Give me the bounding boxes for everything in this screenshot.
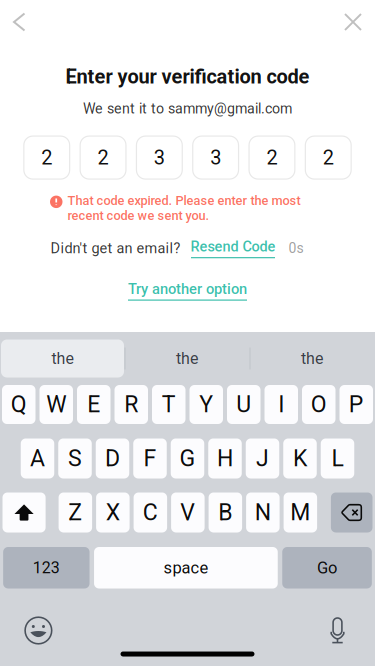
staticText: 123 — [33, 558, 60, 577]
staticText: K — [293, 445, 307, 472]
button[interactable]: G — [171, 438, 204, 478]
button[interactable]: F — [133, 438, 167, 478]
button[interactable]: W — [39, 385, 73, 424]
staticText: X — [106, 499, 120, 526]
button[interactable]: the — [125, 339, 249, 377]
staticText: Y — [199, 391, 213, 418]
staticText: That code expired. Please enter the most… — [67, 193, 300, 223]
staticText: 3 — [154, 146, 165, 169]
button[interactable]: D — [96, 438, 129, 478]
button[interactable]: 2 — [80, 136, 126, 179]
button[interactable]: 2 — [305, 136, 351, 179]
button[interactable]: O — [302, 385, 335, 424]
button[interactable]: R — [114, 385, 148, 424]
button[interactable]: X — [96, 492, 130, 532]
button[interactable]: Z — [59, 492, 92, 532]
button[interactable]: Go — [282, 547, 372, 588]
staticText: the — [51, 349, 73, 368]
button[interactable]: V — [171, 492, 205, 532]
button[interactable]: M — [284, 492, 317, 532]
staticText: E — [87, 391, 100, 418]
button[interactable]: U — [227, 385, 260, 424]
staticText: B — [218, 499, 232, 526]
staticText: Enter your verification code — [65, 65, 309, 88]
staticText: Didn't get an email? — [50, 240, 180, 257]
staticText: Go — [317, 558, 337, 577]
staticText: L — [331, 445, 343, 472]
staticText: the — [176, 349, 198, 368]
staticText: V — [180, 499, 195, 526]
staticText: 2 — [41, 146, 52, 169]
staticText: N — [255, 499, 271, 526]
staticText: R — [124, 391, 138, 418]
staticText: S — [68, 445, 82, 472]
button[interactable]: Back — [1, 5, 37, 39]
staticText: 0s — [288, 240, 303, 256]
button[interactable]: Try another option — [128, 280, 247, 301]
staticText: A — [30, 445, 45, 472]
button[interactable]: N — [246, 492, 280, 532]
staticText: 3 — [210, 146, 221, 169]
button[interactable]: the — [1, 339, 124, 377]
button[interactable]: 123 — [3, 547, 89, 588]
staticText: C — [143, 499, 158, 526]
button[interactable]: Resend Code — [190, 238, 275, 258]
staticText: I — [278, 391, 284, 418]
staticText: 2 — [97, 146, 108, 169]
staticText: F — [143, 445, 156, 472]
button[interactable]: J — [246, 438, 279, 478]
staticText: 2 — [323, 146, 334, 169]
button[interactable]: P — [339, 385, 373, 424]
button[interactable]: Emoji — [18, 610, 58, 650]
button[interactable]: K — [283, 438, 317, 478]
button[interactable]: space — [94, 547, 278, 588]
staticText: H — [217, 445, 233, 472]
button[interactable]: C — [134, 492, 167, 532]
staticText: P — [349, 391, 364, 418]
button[interactable]: Close — [335, 5, 371, 39]
staticText: J — [256, 445, 269, 472]
button[interactable]: E — [77, 385, 110, 424]
staticText: T — [162, 391, 176, 418]
button[interactable]: H — [208, 438, 242, 478]
button[interactable]: Q — [2, 385, 35, 424]
staticText: 2 — [266, 146, 277, 169]
button[interactable]: 3 — [193, 136, 238, 179]
button[interactable]: 2 — [249, 136, 295, 179]
staticText: the — [301, 349, 323, 368]
staticText: We sent it to sammy@gmail.com — [83, 100, 292, 117]
button[interactable]: the — [250, 339, 374, 377]
button[interactable]: L — [321, 438, 354, 478]
button[interactable]: Y — [189, 385, 223, 424]
button[interactable]: B — [209, 492, 242, 532]
staticText: G — [179, 445, 195, 472]
staticText: W — [46, 391, 66, 418]
button[interactable]: Delete — [331, 492, 372, 532]
button[interactable]: Shift — [2, 492, 46, 532]
staticText: U — [236, 391, 251, 418]
staticText: space — [163, 558, 208, 577]
staticText: Z — [68, 499, 82, 526]
button[interactable]: S — [58, 438, 92, 478]
staticText: D — [105, 445, 120, 472]
staticText: O — [311, 391, 327, 418]
staticText: Try another option — [128, 280, 247, 297]
button[interactable]: I — [264, 385, 298, 424]
button[interactable]: A — [21, 438, 54, 478]
button[interactable]: T — [152, 385, 185, 424]
button[interactable]: 2 — [24, 136, 70, 179]
button[interactable]: Dictation — [317, 610, 357, 650]
staticText: M — [290, 499, 310, 526]
staticText: Q — [11, 391, 27, 418]
staticText: Resend Code — [190, 238, 275, 255]
button[interactable]: 3 — [136, 136, 182, 179]
